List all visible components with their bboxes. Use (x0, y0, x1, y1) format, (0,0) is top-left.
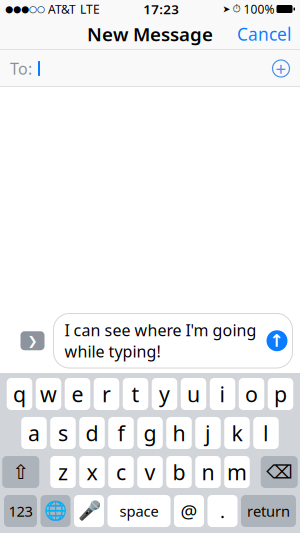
staticText: return (247, 501, 290, 521)
button[interactable]: j (195, 417, 221, 449)
staticText: space (119, 501, 158, 521)
button[interactable]: l (253, 417, 279, 449)
staticText: 123 (8, 501, 32, 521)
button[interactable]: Cancel (228, 14, 300, 53)
button[interactable]: a (21, 417, 47, 449)
button[interactable]: b (166, 456, 192, 488)
button[interactable]: d (79, 417, 105, 449)
staticText: j (205, 419, 211, 447)
button[interactable]: return (241, 495, 296, 527)
button[interactable]: Expand app drawer (18, 324, 46, 358)
staticText: ❯ (27, 334, 37, 347)
button[interactable]: t (123, 378, 148, 410)
button[interactable]: w (36, 378, 61, 410)
staticText: New Message (87, 22, 213, 46)
button[interactable]: Next keyboard (40, 495, 70, 527)
button[interactable]: Numbers (4, 495, 37, 527)
staticText: ⌫ (266, 461, 292, 483)
staticText: 100% (243, 1, 274, 17)
button[interactable]: Period (207, 495, 237, 527)
staticText: 17:23 (143, 0, 179, 18)
staticText: c (116, 458, 126, 486)
staticText: b (172, 458, 185, 486)
button[interactable]: Shift (2, 456, 39, 488)
button[interactable]: x (79, 456, 105, 488)
staticText: LTE (80, 1, 100, 17)
staticText: @ (180, 499, 197, 523)
staticText: ⏱ (232, 4, 240, 14)
staticText: I can see where I'm going while typing! (64, 319, 256, 362)
staticText: ●●●○○ (5, 4, 45, 14)
button[interactable]: Send (264, 328, 289, 353)
button[interactable]: v (137, 456, 163, 488)
staticText: z (58, 458, 68, 486)
button[interactable]: z (50, 456, 76, 488)
button[interactable]: space (107, 495, 170, 527)
staticText: d (85, 419, 98, 447)
staticText: v (144, 458, 155, 486)
staticText: f (117, 419, 124, 447)
button[interactable]: f (108, 417, 134, 449)
staticText: p (274, 380, 287, 408)
staticText: i (219, 380, 225, 408)
staticText: m (227, 458, 247, 486)
staticText: a (28, 419, 40, 447)
button[interactable]: n (195, 456, 221, 488)
staticText: AT&T (48, 1, 76, 17)
staticText: ↑ (269, 331, 284, 351)
staticText: t (131, 380, 139, 408)
staticText: n (201, 458, 214, 486)
staticText: 🎤 (77, 500, 100, 522)
staticText: Cancel (237, 22, 291, 45)
button[interactable]: o (239, 378, 264, 410)
button[interactable]: q (7, 378, 32, 410)
button[interactable]: h (166, 417, 192, 449)
button[interactable]: g (137, 417, 163, 449)
staticText: u (187, 380, 200, 408)
button[interactable]: At sign (174, 495, 204, 527)
staticText: 🌐 (44, 500, 67, 522)
button[interactable]: u (181, 378, 206, 410)
button[interactable]: Delete (261, 456, 298, 488)
staticText: ➤ (222, 4, 230, 14)
staticText: e (71, 380, 83, 408)
staticText: . (220, 499, 225, 523)
staticText: To: (10, 58, 32, 79)
button[interactable]: i (210, 378, 235, 410)
staticText: + (275, 56, 286, 81)
staticText: k (231, 419, 242, 447)
button[interactable]: p (268, 378, 293, 410)
button[interactable]: m (224, 456, 250, 488)
button[interactable]: y (152, 378, 177, 410)
staticText: x (86, 458, 97, 486)
staticText: h (172, 419, 185, 447)
staticText: w (40, 380, 57, 408)
staticText: o (245, 380, 258, 408)
button[interactable]: k (224, 417, 250, 449)
button[interactable]: r (94, 378, 119, 410)
staticText: r (102, 380, 111, 408)
button[interactable]: Dictate (74, 495, 104, 527)
button[interactable]: s (50, 417, 76, 449)
button[interactable]: Add contact (267, 54, 295, 82)
staticText: y (159, 380, 170, 408)
staticText: g (143, 419, 156, 447)
staticText: ⇧ (12, 461, 29, 483)
staticText: s (58, 419, 68, 447)
staticText: q (13, 380, 26, 408)
button[interactable]: e (65, 378, 90, 410)
staticText: l (263, 419, 269, 447)
button[interactable]: c (108, 456, 134, 488)
